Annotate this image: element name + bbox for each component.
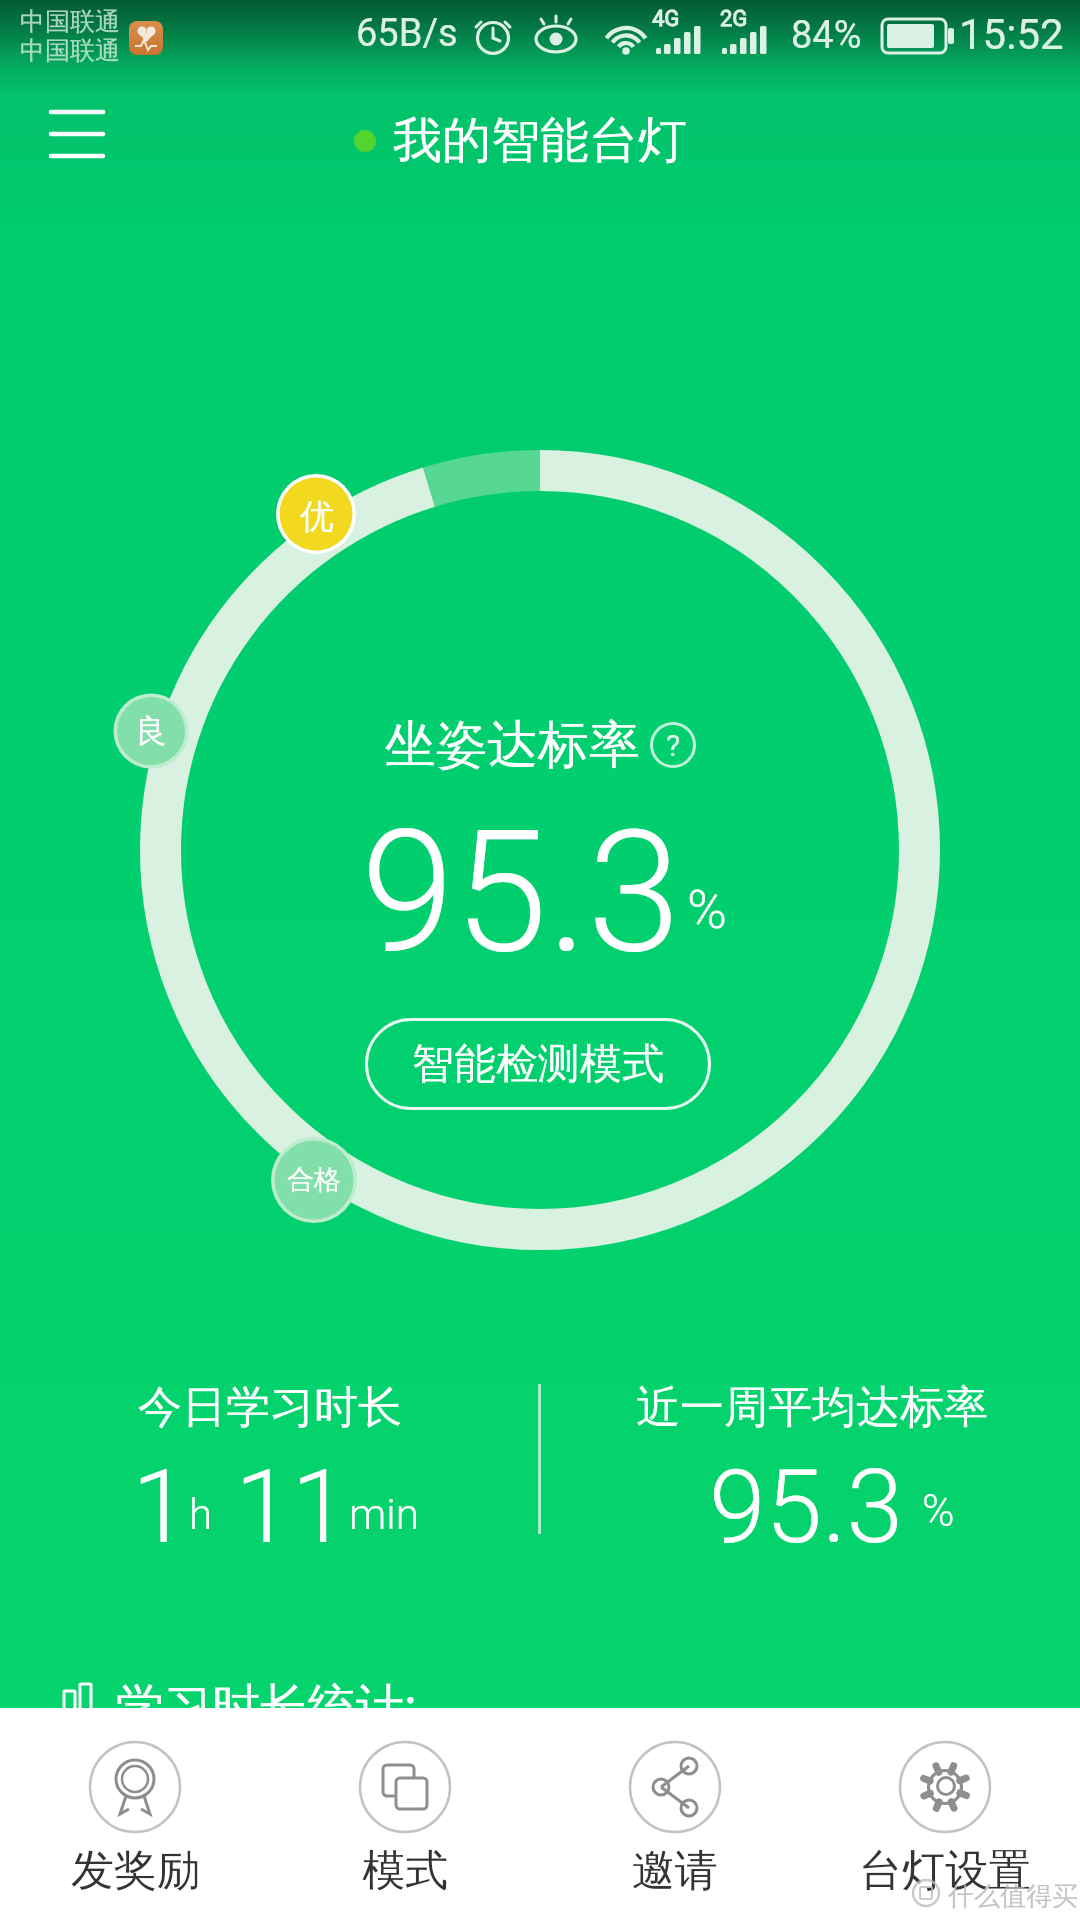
staticText: 中国联通 — [20, 6, 120, 37]
staticText: 95.3 — [709, 1447, 904, 1547]
staticText: 近一周平均达标率 — [636, 1380, 988, 1435]
staticText: ? — [666, 728, 681, 763]
staticText: 什么值得买 — [948, 1880, 1078, 1913]
staticText: 中国联通 — [20, 35, 120, 66]
button[interactable]: 发奖励 — [0, 1708, 270, 1920]
button[interactable]: 台灯设置 — [810, 1708, 1080, 1920]
staticText: 模式 — [362, 1844, 448, 1898]
staticText: 我的智能台灯 — [393, 110, 687, 172]
button[interactable] — [36, 96, 118, 170]
staticText: 发奖励 — [71, 1844, 200, 1898]
button[interactable]: 智能检测模式 — [365, 1018, 711, 1110]
button[interactable]: 邀请 — [540, 1708, 810, 1920]
staticText: min — [349, 1490, 419, 1539]
staticText: 邀请 — [632, 1844, 718, 1898]
staticText: % — [687, 878, 727, 941]
staticText: 坐姿达标率 — [385, 713, 640, 777]
staticText: 65B/s — [356, 11, 458, 56]
staticText: 4G — [652, 6, 680, 32]
staticText: 11 — [235, 1447, 349, 1547]
button[interactable]: 模式 — [270, 1708, 540, 1920]
staticText: 1 — [132, 1447, 189, 1547]
staticText: 智能检测模式 — [412, 1038, 664, 1091]
staticText: 优 — [300, 495, 334, 538]
staticText: 2G — [720, 6, 748, 32]
staticText: 合格 — [287, 1163, 341, 1197]
staticText: 15:52 — [959, 10, 1064, 59]
staticText: 学习时长统计: — [116, 1672, 417, 1738]
staticText: 84% — [791, 13, 862, 58]
staticText: 今日学习时长 — [138, 1380, 402, 1435]
staticText: 良 — [135, 711, 167, 751]
staticText: % — [922, 1485, 955, 1537]
staticText: h — [189, 1490, 213, 1539]
button[interactable]: ? — [650, 722, 696, 768]
staticText: 95.3 — [361, 794, 681, 991]
staticText: 台灯设置 — [859, 1844, 1031, 1898]
